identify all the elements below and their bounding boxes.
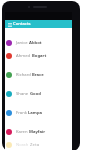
staticText: Janice: [16, 40, 28, 46]
staticText: Frank: [16, 110, 27, 116]
staticText: Abbot: [29, 40, 42, 46]
staticText: Brace: [32, 72, 44, 78]
staticText: Bogart: [32, 53, 47, 59]
button[interactable]: Janice: [5, 37, 72, 49]
staticText: Zeta: [30, 142, 40, 148]
staticText: Richard: [16, 72, 31, 78]
staticText: Lampa: [28, 110, 43, 116]
button[interactable]: Norah: [5, 139, 72, 150]
button[interactable]: Richard: [5, 69, 72, 81]
staticText: Mayfair: [29, 129, 46, 135]
staticText: Norah: [16, 142, 29, 148]
staticText: Good: [30, 91, 41, 97]
staticText: Karen: [16, 129, 28, 135]
staticText: Contacts: [13, 21, 31, 27]
staticText: Shane: [16, 91, 29, 97]
button[interactable]: Frank: [5, 107, 72, 119]
button[interactable]: Ahmed: [5, 50, 72, 62]
button[interactable]: Karen: [5, 126, 72, 138]
button[interactable]: Shane: [5, 88, 72, 100]
button[interactable]: Open navigation menu: [7, 22, 12, 27]
staticText: Ahmed: [16, 53, 31, 59]
